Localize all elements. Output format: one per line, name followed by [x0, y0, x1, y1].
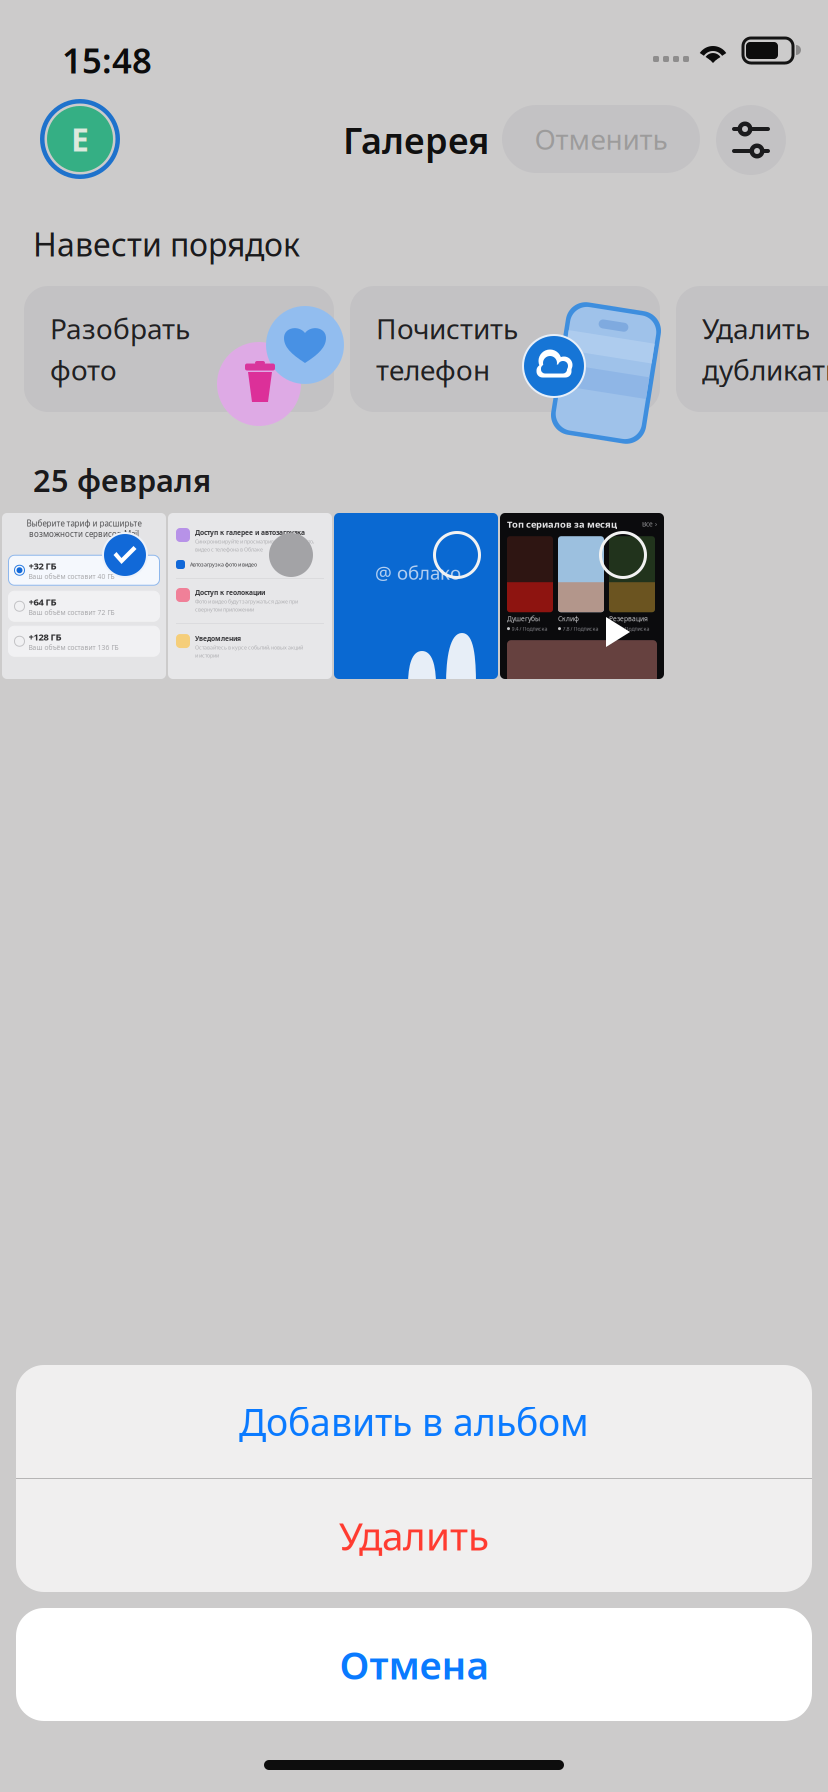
button[interactable]: Filters	[716, 105, 786, 175]
staticText: Добавить в альбом	[239, 1397, 589, 1446]
staticText: 25 февраля	[33, 460, 211, 500]
staticText: Удалить	[339, 1510, 489, 1561]
staticText: Почистить	[376, 310, 518, 347]
staticText: E	[71, 118, 89, 160]
button[interactable]: Почистить	[350, 286, 660, 412]
staticText: Душегубы	[507, 614, 540, 623]
staticText: и историй	[195, 652, 219, 659]
staticText: Отмена	[339, 1639, 488, 1690]
staticText: Синхронизируйте и просматривайте ваши фо…	[195, 538, 314, 545]
button[interactable]: Разобрать	[24, 286, 334, 412]
button[interactable]: Удалить	[16, 1479, 812, 1592]
staticText: 9.4 / Подписка	[511, 625, 547, 632]
staticText: фото	[50, 351, 117, 388]
staticText: Навести порядок	[33, 223, 300, 265]
staticText: Фото и видео будут загружаться даже при	[195, 598, 298, 605]
staticText: Галерея	[343, 116, 489, 164]
staticText: Топ сериалов за месяц	[507, 518, 617, 530]
button[interactable]: Profile	[40, 99, 120, 179]
staticText: 7.8 / Подписка	[562, 625, 598, 632]
staticText: Доступ к геолокации	[195, 588, 265, 597]
staticText: Автозагрузка фото и видео	[190, 561, 257, 568]
staticText: возможности сервисов Mail	[29, 529, 139, 539]
staticText: 4.2 / Подписка	[613, 625, 649, 632]
staticText: 15:48	[62, 37, 152, 83]
staticText: Разобрать	[50, 310, 190, 347]
staticText: Ваш объём составит 72 ГБ	[28, 608, 114, 617]
staticText: Все ›	[642, 520, 657, 528]
staticText: свёрнутом приложении	[195, 606, 254, 613]
staticText: Ваш объём составит 136 ГБ	[28, 643, 118, 652]
staticText: Резервация	[609, 614, 648, 623]
staticText: Доступ к галерее и автозагрузка	[195, 528, 305, 537]
staticText: Ваш объём составит 40 ГБ	[28, 572, 114, 581]
staticText: Склиф	[558, 614, 579, 623]
staticText: Отменить	[534, 120, 667, 158]
staticText: видео с телефона в Облаке	[195, 546, 263, 553]
staticText: телефон	[376, 351, 490, 388]
staticText: Уведомления	[195, 634, 241, 643]
staticText: +32 ГБ	[28, 560, 56, 572]
staticText: @ облако	[375, 560, 461, 585]
staticText: Удалить	[702, 310, 810, 347]
staticText: Выберите тариф и расширьте	[26, 518, 141, 529]
button[interactable]: Отмена	[16, 1608, 812, 1721]
button[interactable]: Отменить	[502, 105, 700, 173]
button[interactable]: Добавить в альбом	[16, 1365, 812, 1478]
button[interactable]: Удалить	[676, 286, 828, 412]
staticText: Оставайтесь в курсе событий, новых акций	[195, 644, 303, 651]
staticText: дубликаты	[702, 351, 828, 388]
staticText: +128 ГБ	[28, 631, 61, 643]
staticText: +64 ГБ	[28, 596, 56, 608]
